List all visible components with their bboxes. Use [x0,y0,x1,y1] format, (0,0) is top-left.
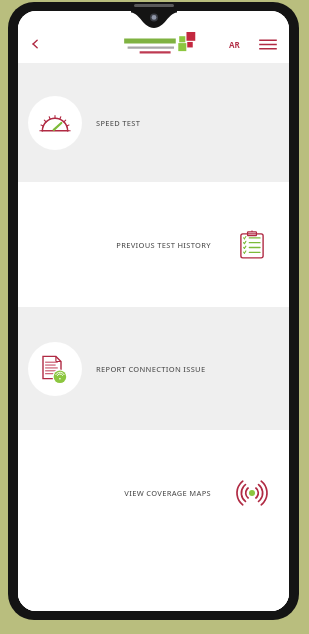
staticText: VIEW COVERAGE MAPS [124,488,211,498]
button[interactable]: AR [224,35,245,54]
button[interactable]: REPORT CONNECTION ISSUE [18,307,289,430]
staticText: SPEED TEST [96,118,141,128]
staticText: AR [229,39,240,50]
button[interactable]: Back [20,29,50,59]
button[interactable]: SPEED TEST [18,63,289,182]
button[interactable]: PREVIOUS TEST HISTORY [18,182,289,307]
button[interactable]: Menu [255,31,281,57]
staticText: PREVIOUS TEST HISTORY [116,240,211,250]
staticText: REPORT CONNECTION ISSUE [96,364,206,374]
button[interactable]: VIEW COVERAGE MAPS [18,430,289,555]
button[interactable]: Telecommunications Regulatory Authority … [119,29,205,59]
